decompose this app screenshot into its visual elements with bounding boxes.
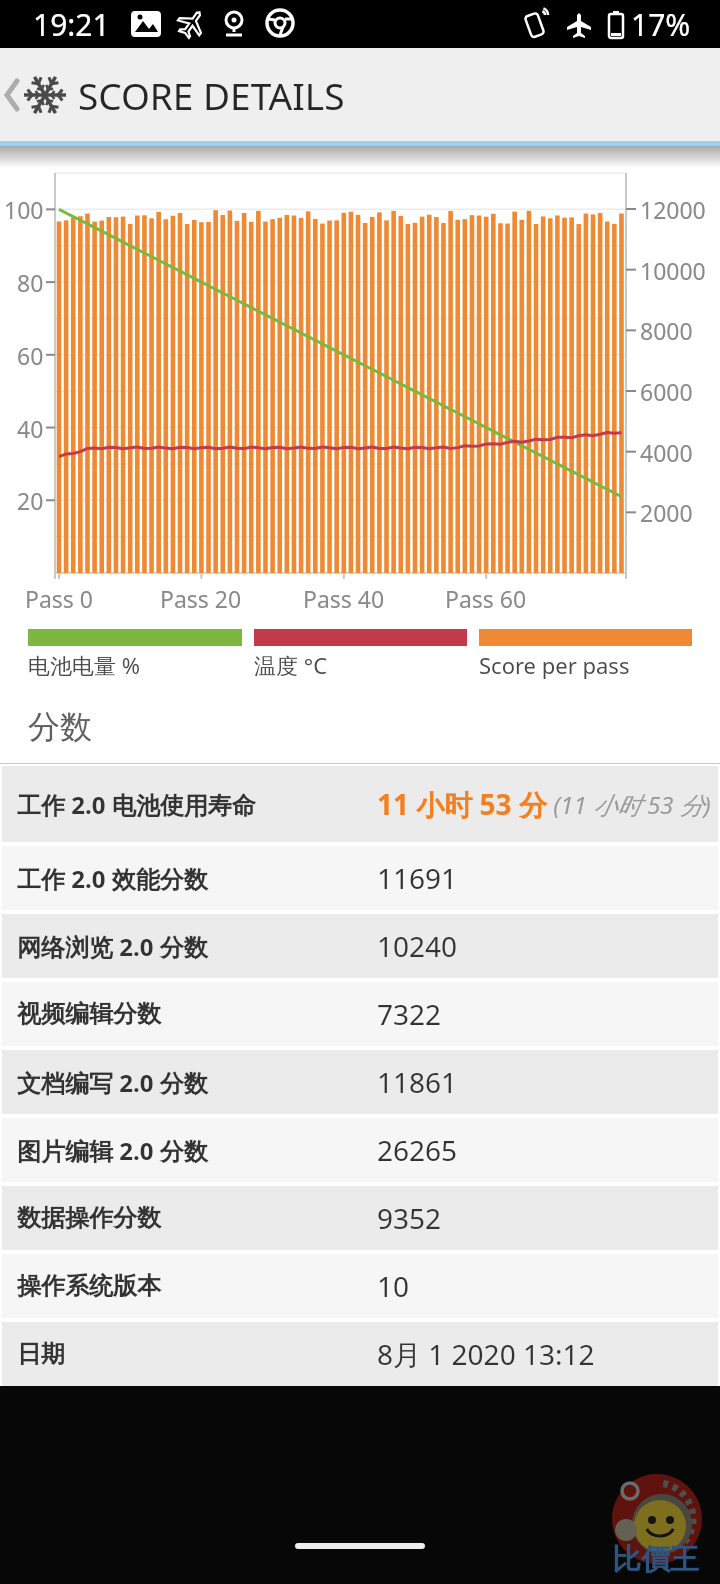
- staticText: 电池电量 %: [28, 650, 141, 680]
- staticText: 文档编写 2.0 分数: [17, 1066, 208, 1099]
- staticText: 网络浏览 2.0 分数: [17, 930, 208, 963]
- staticText: 数据操作分数: [17, 1203, 161, 1233]
- staticText: 8000: [640, 315, 693, 346]
- staticText: Pass 40: [303, 583, 385, 614]
- staticText: 6000: [640, 376, 693, 407]
- staticText: 11691: [377, 859, 458, 897]
- staticText: 26265: [377, 1131, 458, 1169]
- button[interactable]: 网络浏览 2.0 分数: [2, 914, 718, 978]
- staticText: Pass 0: [25, 583, 93, 614]
- button[interactable]: 工作 2.0 效能分数: [2, 846, 718, 910]
- staticText: 20: [17, 485, 44, 516]
- staticText: 10240: [377, 927, 458, 965]
- staticText: 100: [4, 194, 44, 225]
- staticText: Score per pass: [479, 650, 630, 680]
- staticText: 17%: [631, 4, 691, 45]
- staticText: 工作 2.0 电池使用寿命: [17, 788, 256, 821]
- staticText: 8月 1 2020 13:12: [377, 1335, 595, 1373]
- button[interactable]: 文档编写 2.0 分数: [2, 1050, 718, 1114]
- button[interactable]: 操作系统版本: [2, 1254, 718, 1318]
- staticText: 40: [17, 413, 44, 444]
- staticText: 比價王: [612, 1541, 699, 1578]
- staticText: 日期: [17, 1339, 65, 1369]
- staticText: 10000: [640, 255, 706, 286]
- staticText: 分数: [28, 707, 92, 747]
- staticText: 80: [17, 267, 44, 298]
- button[interactable]: 视频编辑分数: [2, 982, 718, 1046]
- staticText: 10: [377, 1267, 410, 1305]
- staticText: 19:21: [33, 4, 110, 45]
- button[interactable]: SCORE DETAILS: [0, 48, 720, 141]
- staticText: 9352: [377, 1199, 442, 1237]
- staticText: Pass 20: [160, 583, 242, 614]
- staticText: 11861: [377, 1063, 458, 1101]
- button[interactable]: 日期: [2, 1322, 718, 1386]
- staticText: 工作 2.0 效能分数: [17, 862, 208, 895]
- staticText: 7322: [377, 995, 442, 1033]
- staticText: 操作系统版本: [17, 1271, 161, 1301]
- button[interactable]: 电池电量 %: [28, 629, 242, 680]
- button[interactable]: 图片编辑 2.0 分数: [2, 1118, 718, 1182]
- button[interactable]: 工作 2.0 电池使用寿命: [2, 766, 718, 842]
- staticText: Pass 60: [445, 583, 527, 614]
- staticText: 温度 °C: [254, 650, 328, 680]
- staticText: SCORE DETAILS: [78, 70, 345, 120]
- staticText: 12000: [640, 194, 706, 225]
- staticText: 11 小时 53 分: [377, 785, 547, 823]
- button[interactable]: 数据操作分数: [2, 1186, 718, 1250]
- staticText: 4000: [640, 437, 693, 468]
- staticText: 视频编辑分数: [17, 999, 161, 1029]
- staticText: 2000: [640, 497, 693, 528]
- button[interactable]: [295, 1543, 425, 1549]
- staticText: (11 小时 53 分): [547, 788, 711, 821]
- staticText: 图片编辑 2.0 分数: [17, 1134, 208, 1167]
- button[interactable]: 温度 °C: [254, 629, 467, 680]
- button[interactable]: Score per pass: [479, 629, 692, 680]
- staticText: 60: [17, 340, 44, 371]
